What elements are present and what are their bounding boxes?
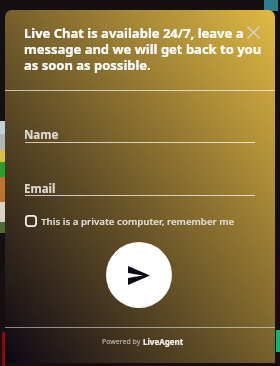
- staticText: Email: [24, 181, 56, 197]
- staticText: Name: [24, 127, 59, 143]
- staticText: Powered by: [102, 337, 143, 347]
- button[interactable]: This is a private computer, remember me: [25, 212, 235, 230]
- button[interactable]: Close chat: [238, 17, 268, 47]
- staticText: LiveAgent: [143, 336, 184, 347]
- staticText: Live Chat is available 24/7, leave a mes…: [24, 24, 266, 73]
- staticText: This is a private computer, remember me: [41, 215, 235, 228]
- button[interactable]: Send message: [106, 242, 172, 308]
